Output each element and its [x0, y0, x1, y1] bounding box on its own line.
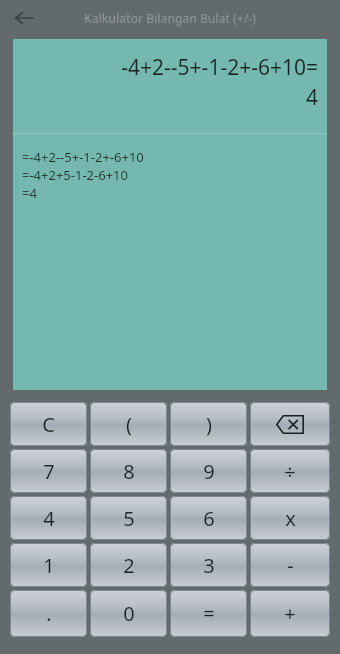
staticText: 1 [43, 552, 55, 579]
staticText: =4 [22, 184, 37, 202]
button[interactable]: 9 [170, 449, 247, 493]
staticText: 3 [203, 552, 215, 579]
staticText: . [46, 600, 52, 627]
button[interactable]: ÷ [250, 449, 330, 493]
button[interactable]: - [250, 543, 330, 587]
button[interactable]: Navigate up [2, 0, 46, 36]
staticText: ) [206, 411, 212, 438]
button[interactable]: x [250, 496, 330, 540]
button[interactable]: = [170, 590, 247, 637]
staticText: Kalkulator Bilangan Bulat (+/-) [84, 10, 256, 26]
button[interactable]: 2 [90, 543, 167, 587]
button[interactable]: 1 [10, 543, 87, 587]
button[interactable]: Backspace [250, 402, 330, 446]
staticText: x [285, 505, 296, 532]
button[interactable]: + [250, 590, 330, 637]
staticText: 2 [123, 552, 135, 579]
staticText: - [287, 552, 294, 579]
staticText: 5 [123, 505, 135, 532]
staticText: =-4+2--5+-1-2+-6+10 [22, 148, 144, 166]
button[interactable]: 7 [10, 449, 87, 493]
staticText: -4+2--5+-1-2+-6+10= 4 [22, 53, 318, 111]
button[interactable]: ) [170, 402, 247, 446]
button[interactable]: . [10, 590, 87, 637]
staticText: 7 [43, 458, 55, 485]
staticText: = [203, 600, 215, 627]
staticText: 0 [123, 600, 135, 627]
button[interactable]: 0 [90, 590, 167, 637]
staticText: C [42, 411, 55, 438]
staticText: + [284, 600, 296, 627]
staticText: =-4+2+5-1-2-6+10 [22, 166, 128, 184]
staticText: ( [126, 411, 132, 438]
button[interactable]: ( [90, 402, 167, 446]
staticText: ÷ [284, 458, 296, 485]
staticText: 9 [203, 458, 215, 485]
button[interactable]: 6 [170, 496, 247, 540]
staticText: 6 [203, 505, 215, 532]
staticText: 4 [43, 505, 55, 532]
staticText: 8 [123, 458, 135, 485]
button[interactable]: 8 [90, 449, 167, 493]
button[interactable]: 4 [10, 496, 87, 540]
button[interactable]: 5 [90, 496, 167, 540]
button[interactable]: 3 [170, 543, 247, 587]
button[interactable]: C [10, 402, 87, 446]
